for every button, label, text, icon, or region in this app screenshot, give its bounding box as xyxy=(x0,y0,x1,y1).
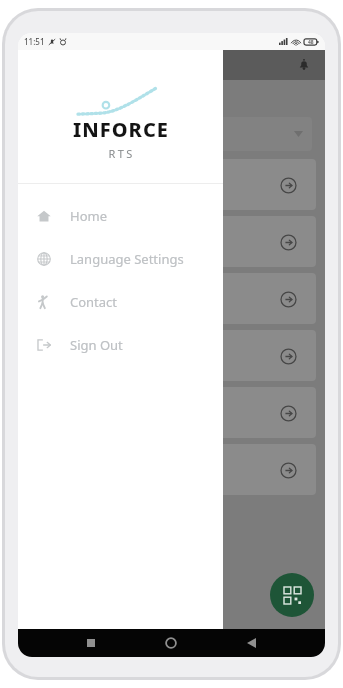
button[interactable]: Home xyxy=(18,194,223,237)
button[interactable]: Open tour details xyxy=(277,231,299,253)
staticText: RTS xyxy=(108,146,135,161)
button[interactable]: Recents xyxy=(79,631,103,655)
button[interactable]: Sign Out xyxy=(18,323,223,366)
button[interactable]: Open tour details xyxy=(277,402,299,424)
button[interactable]: Back xyxy=(239,631,263,655)
button[interactable]: Scan QR code xyxy=(270,573,314,617)
staticText: Language Settings xyxy=(70,250,184,268)
button[interactable] xyxy=(31,117,312,151)
staticText: Home xyxy=(70,207,107,225)
button[interactable]: Open tour details xyxy=(277,174,299,196)
button[interactable]: Patrol xyxy=(27,273,316,324)
button[interactable]: Open tour details xyxy=(277,345,299,367)
button[interactable]: Home xyxy=(159,631,183,655)
button[interactable]: Notifications xyxy=(294,55,314,75)
staticText: Gate xyxy=(38,168,67,184)
button[interactable]: Patrol xyxy=(27,387,316,438)
staticText: Sign Out xyxy=(70,336,123,354)
staticText: 12:30 xyxy=(38,301,64,315)
button[interactable]: Contact xyxy=(18,280,223,323)
button[interactable]: Open tour details xyxy=(277,288,299,310)
button[interactable]: Open tour details xyxy=(277,459,299,481)
button[interactable]: Patrol xyxy=(27,216,316,267)
button[interactable]: Patrol xyxy=(27,444,316,495)
staticText: INFORCE xyxy=(73,116,169,143)
staticText: Patrol xyxy=(38,282,75,298)
staticText: 13:30 xyxy=(38,244,64,258)
button[interactable]: Patrol xyxy=(27,330,316,381)
button[interactable]: Language Settings xyxy=(18,237,223,280)
button[interactable]: Gate xyxy=(27,159,316,210)
staticText: Contact xyxy=(70,293,118,311)
staticText: 48 xyxy=(308,39,314,46)
staticText: Completed Tours xyxy=(31,91,132,108)
staticText: 11:51 xyxy=(24,36,45,47)
staticText: Patrol xyxy=(38,339,75,355)
